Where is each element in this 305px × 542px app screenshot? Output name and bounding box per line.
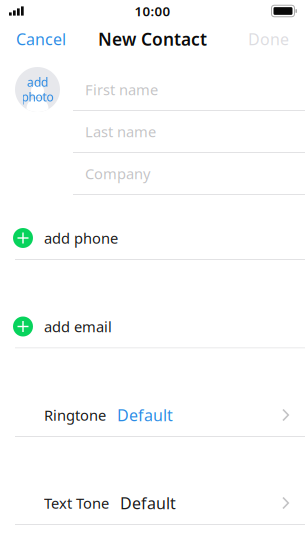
- button[interactable]: add email: [0, 305, 305, 347]
- button[interactable]: Cancel: [0, 19, 80, 59]
- staticText: Ringtone: [44, 405, 106, 425]
- staticText: Last name: [85, 122, 156, 141]
- button[interactable]: Text Tone: [0, 482, 305, 524]
- staticText: Default: [117, 404, 173, 426]
- staticText: add: [27, 74, 48, 90]
- button[interactable]: Add photo: [15, 67, 60, 112]
- staticText: Company: [85, 164, 150, 183]
- staticText: First name: [85, 80, 158, 99]
- staticText: Done: [248, 28, 289, 50]
- button[interactable]: add phone: [0, 217, 305, 259]
- staticText: New Contact: [98, 27, 207, 50]
- button[interactable]: Done: [234, 19, 305, 59]
- staticText: add email: [44, 317, 112, 336]
- staticText: Text Tone: [44, 493, 109, 513]
- staticText: photo: [21, 89, 53, 105]
- staticText: 10:00: [134, 2, 170, 20]
- button[interactable]: Ringtone: [0, 394, 305, 436]
- staticText: Cancel: [16, 28, 66, 50]
- staticText: add phone: [44, 228, 118, 248]
- staticText: Default: [120, 492, 176, 514]
